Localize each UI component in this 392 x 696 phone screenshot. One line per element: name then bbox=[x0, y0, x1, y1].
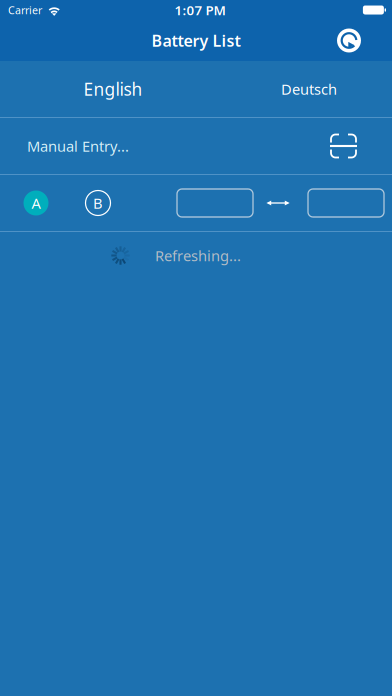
button[interactable]: Manual Entry... bbox=[0, 118, 392, 174]
button[interactable]: B bbox=[76, 178, 120, 228]
staticText: B bbox=[93, 193, 103, 213]
button[interactable]: English bbox=[57, 61, 169, 117]
button[interactable]: Deutsch bbox=[254, 61, 364, 117]
staticText: 1:07 PM bbox=[174, 1, 225, 19]
staticText: English bbox=[83, 77, 142, 100]
staticText: Battery List bbox=[151, 30, 240, 51]
button[interactable]: Refresh bbox=[329, 20, 369, 60]
staticText: Carrier bbox=[8, 3, 42, 17]
staticText: Deutsch bbox=[281, 79, 337, 99]
staticText: Refreshing... bbox=[155, 246, 241, 265]
staticText: A bbox=[31, 193, 40, 213]
staticText: Manual Entry... bbox=[27, 136, 129, 156]
button[interactable]: A bbox=[14, 178, 58, 228]
